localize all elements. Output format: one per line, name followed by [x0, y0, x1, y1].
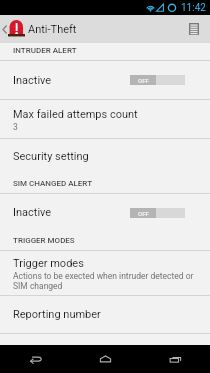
button[interactable]: Max failed attemps count [0, 100, 210, 138]
button[interactable]: Reporting number [0, 296, 210, 333]
staticText: INTRUDER ALERT [13, 46, 77, 55]
staticText: Reporting number [13, 308, 101, 321]
staticText: SIM CHANGED ALERT [13, 179, 93, 188]
button[interactable]: Trigger modes [0, 251, 210, 295]
staticText: TRIGGER MODES [13, 236, 75, 245]
staticText: Trigger modes [13, 257, 84, 270]
staticText: Inactive [13, 74, 52, 87]
button[interactable]: Back [0, 345, 70, 373]
staticText: Anti-Theft [28, 23, 77, 36]
button[interactable]: Recent apps [140, 345, 210, 373]
button[interactable]: Anti-Theft [28, 15, 77, 43]
button[interactable]: Navigate up [0, 15, 27, 43]
button[interactable]: More options [183, 15, 210, 43]
staticText: 11:42 [181, 2, 206, 14]
button[interactable]: Security setting [0, 139, 210, 174]
staticText: Inactive [13, 206, 52, 219]
button[interactable]: Inactive [0, 194, 210, 231]
staticText: 3 [13, 122, 18, 132]
staticText: Security setting [13, 150, 89, 163]
staticText: OFF [138, 77, 149, 84]
button[interactable]: Inactive [0, 61, 210, 99]
staticText: OFF [138, 210, 149, 217]
staticText: Actions to be exected when intruder dete… [13, 271, 194, 292]
button[interactable]: Home [70, 345, 140, 373]
staticText: Max failed attemps count [13, 108, 138, 121]
